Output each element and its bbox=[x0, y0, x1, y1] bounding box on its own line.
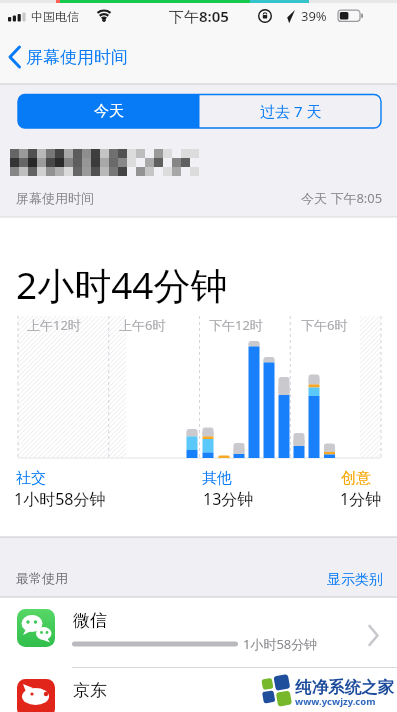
button[interactable]: 京东 bbox=[0, 668, 397, 712]
button[interactable]: 今天 bbox=[18, 94, 200, 128]
staticText: 今天 下午8:05 bbox=[301, 189, 383, 207]
button[interactable]: 屏幕使用时间 bbox=[4, 42, 174, 72]
staticText: 创意 bbox=[341, 469, 371, 488]
staticText: 下午12时 bbox=[209, 316, 263, 334]
staticText: www.ycwjzy.com bbox=[295, 695, 376, 708]
staticText: 显示类别 bbox=[327, 571, 383, 589]
button[interactable]: 微信 bbox=[0, 598, 397, 667]
staticText: 最常使用 bbox=[16, 570, 68, 586]
staticText: 过去 7 天 bbox=[260, 101, 322, 121]
staticText: 1分钟 bbox=[340, 488, 382, 510]
staticText: 中国电信 bbox=[31, 9, 79, 24]
staticText: 今天 bbox=[94, 102, 124, 121]
staticText: 13分钟 bbox=[203, 488, 254, 510]
button[interactable]: 过去 7 天 bbox=[200, 94, 381, 128]
staticText: 纯净系统之家 bbox=[295, 677, 394, 698]
button[interactable]: 显示类别 bbox=[263, 565, 383, 595]
staticText: 下午6时 bbox=[301, 316, 348, 334]
staticText: 1小时58分钟 bbox=[243, 635, 318, 653]
staticText: 上午6时 bbox=[119, 316, 166, 334]
staticText: 39% bbox=[301, 7, 327, 25]
staticText: 屏幕使用时间 bbox=[16, 190, 94, 206]
staticText: 社交 bbox=[16, 469, 46, 488]
staticText: 京东 bbox=[73, 680, 107, 701]
staticText: 下午8:05 bbox=[169, 6, 229, 26]
staticText: 2小时44分钟 bbox=[16, 259, 228, 310]
staticText: 1小时58分钟 bbox=[14, 488, 106, 510]
staticText: 屏幕使用时间 bbox=[26, 47, 128, 68]
staticText: 上午12时 bbox=[27, 316, 81, 334]
staticText: 微信 bbox=[73, 610, 107, 631]
staticText: 其他 bbox=[202, 469, 232, 488]
